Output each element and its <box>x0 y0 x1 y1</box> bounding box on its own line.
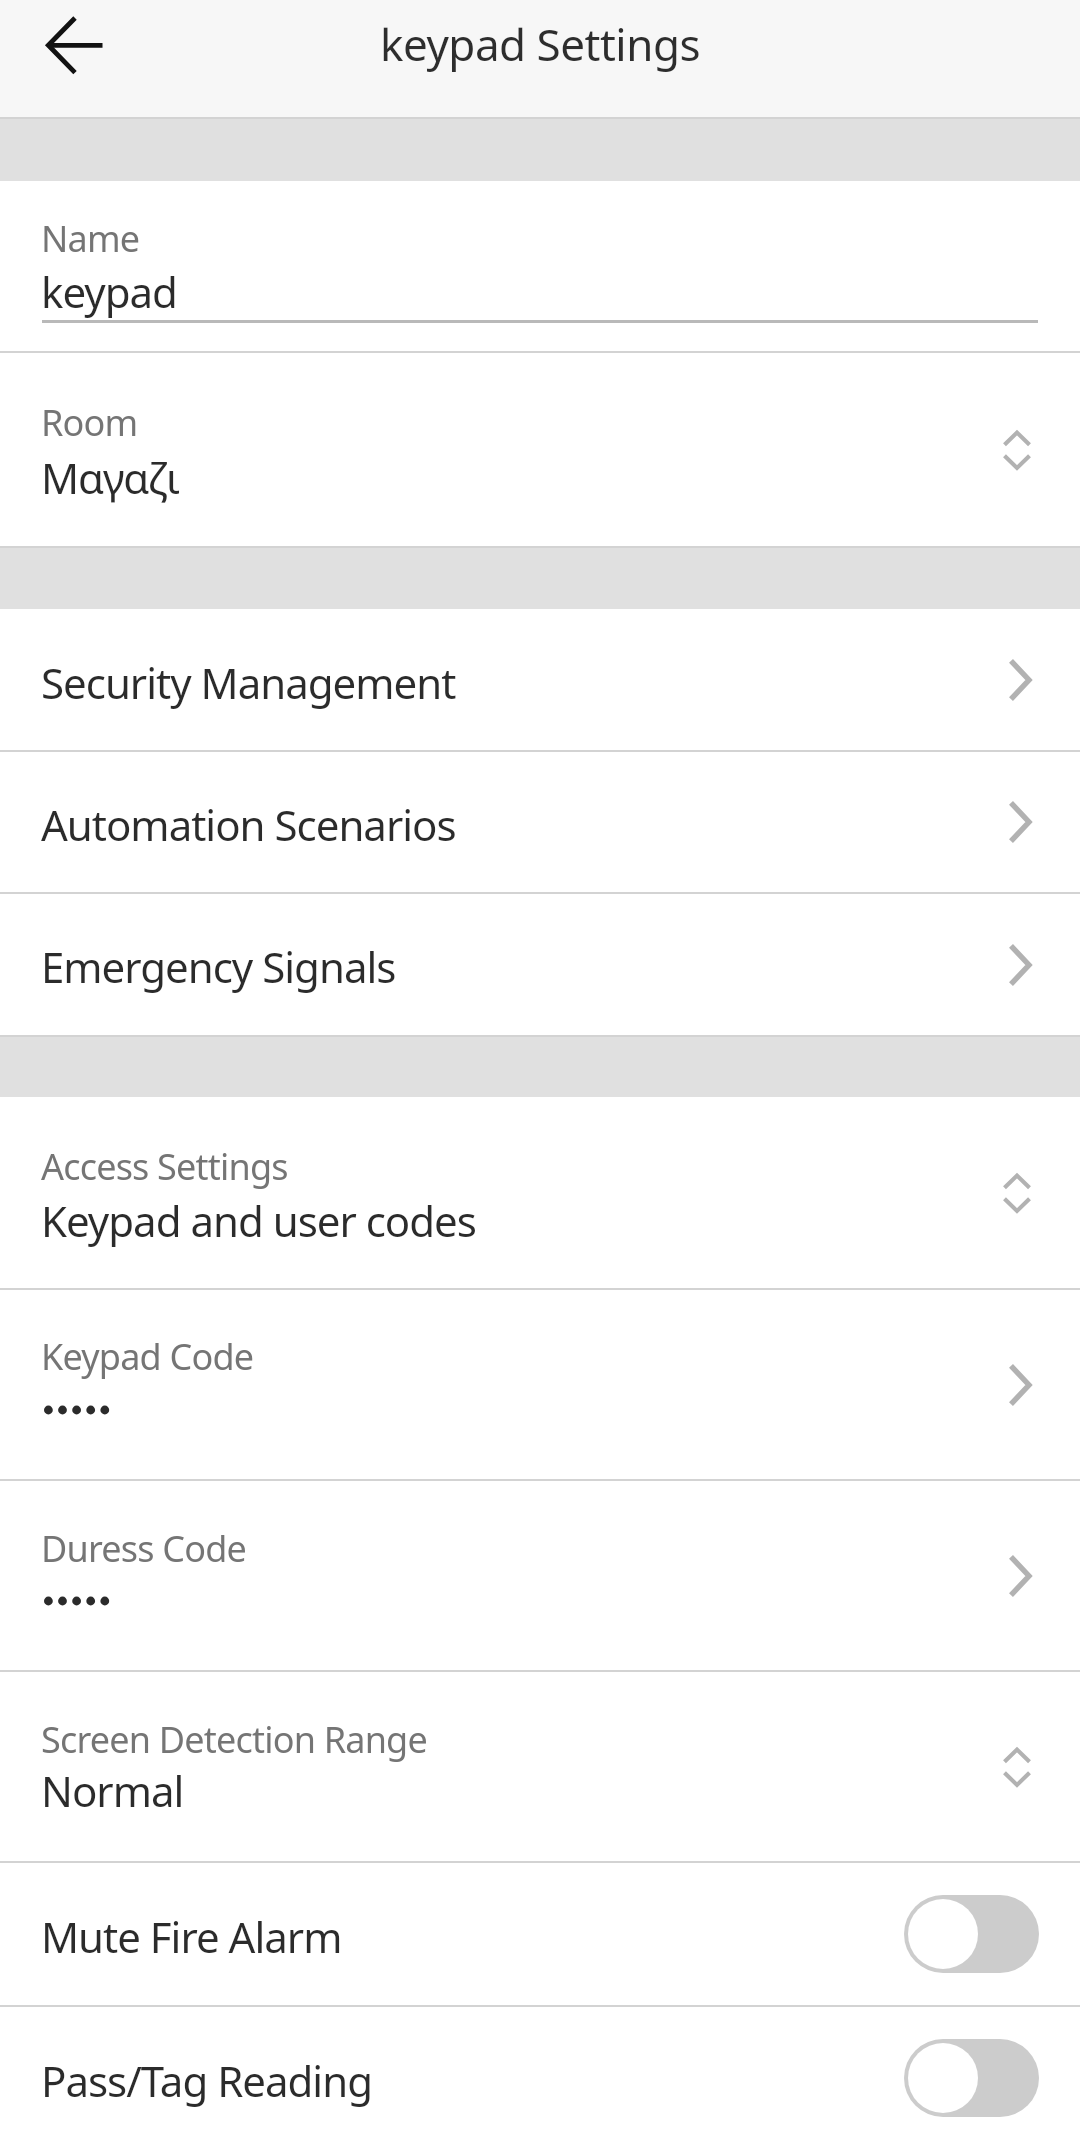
button[interactable]: Pass/Tag Reading <box>0 2007 1080 2139</box>
button[interactable]: Automation Scenarios <box>0 752 1080 892</box>
button[interactable]: Open <box>981 926 1059 1004</box>
button[interactable]: Screen Detection Range <box>0 1672 1080 1861</box>
staticText: Pass/Tag Reading <box>41 2052 372 2109</box>
button[interactable]: Keypad Code <box>0 1290 1080 1479</box>
button[interactable]: Open <box>981 1537 1059 1615</box>
button[interactable]: Toggle <box>904 1895 1039 1973</box>
staticText: keypad Settings <box>380 14 701 74</box>
button[interactable]: Open <box>981 641 1059 719</box>
staticText: Normal <box>41 1762 184 1819</box>
staticText: Mute Fire Alarm <box>41 1908 342 1965</box>
button[interactable]: Duress Code <box>0 1481 1080 1670</box>
button[interactable]: Emergency Signals <box>0 894 1080 1035</box>
button[interactable]: Change <box>978 1154 1056 1232</box>
button[interactable]: Open <box>981 783 1059 861</box>
button[interactable]: Security Management <box>0 609 1080 750</box>
staticText: Keypad and user codes <box>41 1192 476 1249</box>
staticText: Name <box>41 214 140 263</box>
button[interactable]: Access Settings <box>0 1097 1080 1288</box>
staticText: Room <box>41 398 138 447</box>
staticText: Keypad Code <box>41 1332 254 1381</box>
staticText: Μαγαζι <box>41 449 179 506</box>
staticText: Access Settings <box>41 1142 288 1191</box>
button[interactable]: Toggle <box>904 2039 1039 2117</box>
button[interactable]: Room <box>0 353 1080 546</box>
button[interactable]: Mute Fire Alarm <box>0 1863 1080 2005</box>
button[interactable]: Back <box>23 0 128 91</box>
button[interactable]: Change <box>978 411 1056 489</box>
button[interactable]: Open <box>981 1346 1059 1424</box>
staticText: Emergency Signals <box>41 938 396 995</box>
button[interactable]: Name <box>0 181 1080 351</box>
staticText: Duress Code <box>41 1524 247 1573</box>
staticText: Screen Detection Range <box>41 1715 427 1764</box>
staticText: keypad <box>41 263 177 320</box>
staticText: Automation Scenarios <box>41 796 456 853</box>
button[interactable]: Change <box>978 1728 1056 1806</box>
staticText: Security Management <box>41 654 456 711</box>
